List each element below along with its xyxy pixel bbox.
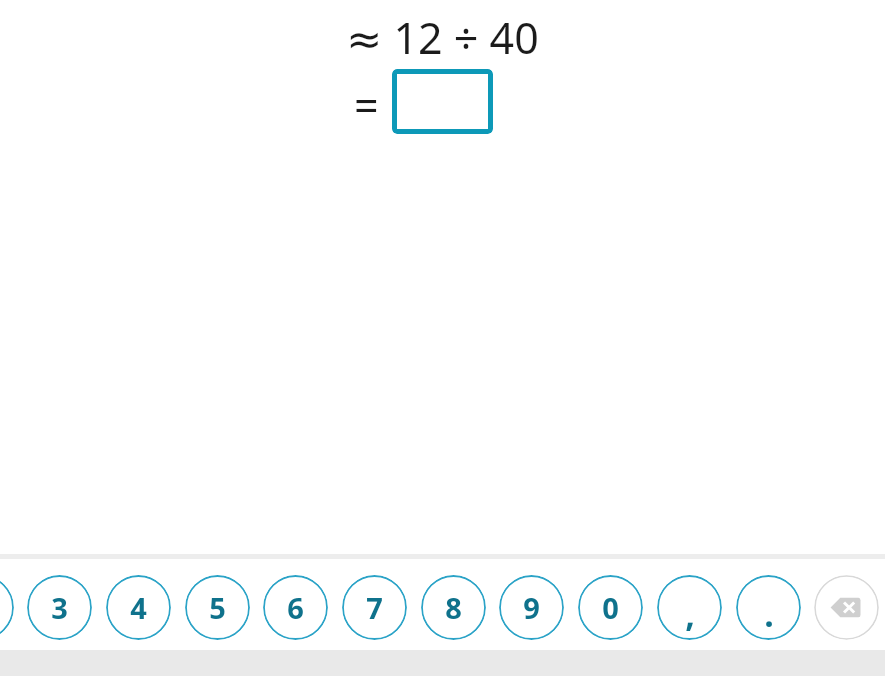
staticText: 5: [209, 588, 226, 627]
staticText: 9: [523, 588, 540, 627]
button[interactable]: 0: [578, 575, 643, 640]
staticText: .: [764, 591, 774, 637]
button[interactable]: Backspace: [814, 575, 879, 640]
button[interactable]: 2: [0, 575, 14, 640]
staticText: 8: [445, 588, 462, 627]
button[interactable]: 6: [263, 575, 328, 640]
staticText: 6: [287, 588, 304, 627]
staticText: 7: [366, 588, 383, 627]
staticText: ,: [685, 591, 695, 637]
button[interactable]: 4: [106, 575, 171, 640]
button[interactable]: .: [736, 575, 801, 640]
staticText: =: [354, 76, 379, 126]
button[interactable]: 5: [185, 575, 250, 640]
staticText: 4: [130, 588, 147, 627]
button[interactable]: 3: [27, 575, 92, 640]
staticText: 3: [51, 588, 68, 627]
staticText: ≈ 12 ÷ 40: [346, 8, 539, 62]
staticText: 0: [602, 588, 619, 627]
button[interactable]: 8: [421, 575, 486, 640]
button[interactable]: Answer field: [392, 69, 493, 134]
button[interactable]: 9: [499, 575, 564, 640]
button[interactable]: ,: [657, 575, 722, 640]
button[interactable]: 7: [342, 575, 407, 640]
